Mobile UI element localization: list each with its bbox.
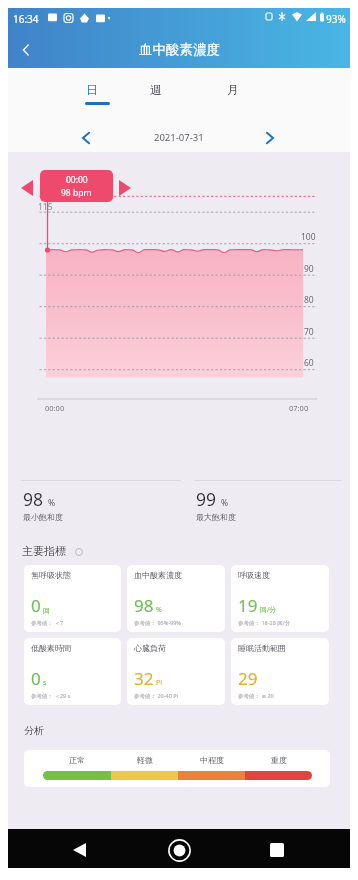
staticText: 中程度 bbox=[200, 755, 224, 765]
staticText: % bbox=[221, 497, 229, 509]
button[interactable]: Recent apps bbox=[259, 832, 295, 868]
staticText: 0 bbox=[31, 594, 41, 617]
staticText: 2021-07-31 bbox=[154, 131, 204, 144]
staticText: 参考値： 95%-99% bbox=[134, 619, 181, 627]
staticText: 16:34 bbox=[13, 12, 39, 26]
staticText: 日 bbox=[86, 82, 98, 97]
staticText: 98 bpm bbox=[61, 187, 92, 199]
button[interactable]: 呼吸速度 bbox=[231, 565, 329, 632]
staticText: 低酸素時間 bbox=[31, 643, 71, 653]
button[interactable]: Back bbox=[10, 34, 42, 66]
button[interactable]: Back bbox=[61, 832, 97, 868]
staticText: 93% bbox=[326, 12, 346, 26]
staticText: 00:00 bbox=[45, 403, 65, 413]
staticText: % bbox=[156, 605, 162, 615]
button[interactable] bbox=[245, 771, 312, 780]
button[interactable]: Previous point bbox=[21, 180, 33, 196]
staticText: 19 bbox=[238, 594, 258, 617]
staticText: 115 bbox=[38, 201, 53, 213]
button[interactable]: 睡眠活動範囲 bbox=[231, 638, 329, 705]
staticText: 重度 bbox=[271, 755, 287, 765]
button[interactable]: 低酸素時間 bbox=[24, 638, 121, 705]
staticText: 回/分 bbox=[260, 605, 277, 615]
staticText: 98 bbox=[23, 487, 44, 511]
staticText: 参考値： 20-40 Pi bbox=[134, 692, 178, 700]
staticText: 月 bbox=[227, 82, 239, 97]
staticText: 参考値： 18-26 回/分 bbox=[238, 619, 291, 627]
staticText: 分析 bbox=[24, 724, 44, 737]
staticText: 100 bbox=[301, 231, 316, 243]
staticText: 最小飽和度 bbox=[23, 512, 63, 522]
button[interactable]: 日 bbox=[77, 82, 107, 105]
staticText: 軽微 bbox=[137, 755, 153, 765]
staticText: 参考値： ＜29 s bbox=[31, 692, 71, 700]
staticText: 最大飽和度 bbox=[196, 512, 236, 522]
button[interactable]: 血中酸素濃度 bbox=[127, 565, 225, 632]
staticText: Pi bbox=[156, 678, 163, 688]
staticText: 参考値： ＜7 bbox=[31, 619, 64, 627]
staticText: 29 bbox=[238, 667, 258, 690]
staticText: 主要指標 bbox=[22, 544, 66, 558]
staticText: 00:00 bbox=[66, 174, 88, 186]
staticText: 血中酸素濃度 bbox=[139, 41, 220, 58]
staticText: 99 bbox=[196, 487, 217, 511]
button[interactable]: 月 bbox=[218, 82, 248, 105]
staticText: 70 bbox=[304, 326, 314, 338]
staticText: 週 bbox=[150, 82, 162, 97]
button[interactable]: Next point bbox=[119, 180, 131, 196]
staticText: 60 bbox=[304, 357, 314, 369]
staticText: % bbox=[48, 497, 56, 509]
staticText: 血中酸素濃度 bbox=[134, 570, 182, 580]
staticText: 0 bbox=[31, 667, 41, 690]
staticText: 回 bbox=[43, 606, 50, 615]
button[interactable]: Next day bbox=[256, 124, 284, 152]
button[interactable]: 無呼吸状態 bbox=[24, 565, 121, 632]
staticText: 80 bbox=[304, 294, 314, 306]
button[interactable]: Home bbox=[161, 832, 197, 868]
staticText: s bbox=[43, 678, 47, 688]
button[interactable]: Previous day bbox=[72, 124, 100, 152]
staticText: 正常 bbox=[69, 755, 85, 765]
staticText: 呼吸速度 bbox=[238, 570, 270, 580]
staticText: 無呼吸状態 bbox=[31, 570, 71, 580]
staticText: 07:00 bbox=[289, 403, 309, 413]
staticText: 98 bbox=[134, 594, 154, 617]
staticText: 90 bbox=[304, 263, 314, 275]
button[interactable]: 心臓負荷 bbox=[127, 638, 225, 705]
staticText: 睡眠活動範囲 bbox=[238, 643, 286, 653]
button[interactable] bbox=[43, 771, 111, 780]
button[interactable]: 週 bbox=[141, 82, 171, 105]
staticText: 参考値： ≤ 20 bbox=[238, 692, 274, 700]
staticText: 32 bbox=[134, 667, 154, 690]
staticText: 心臓負荷 bbox=[134, 643, 166, 653]
